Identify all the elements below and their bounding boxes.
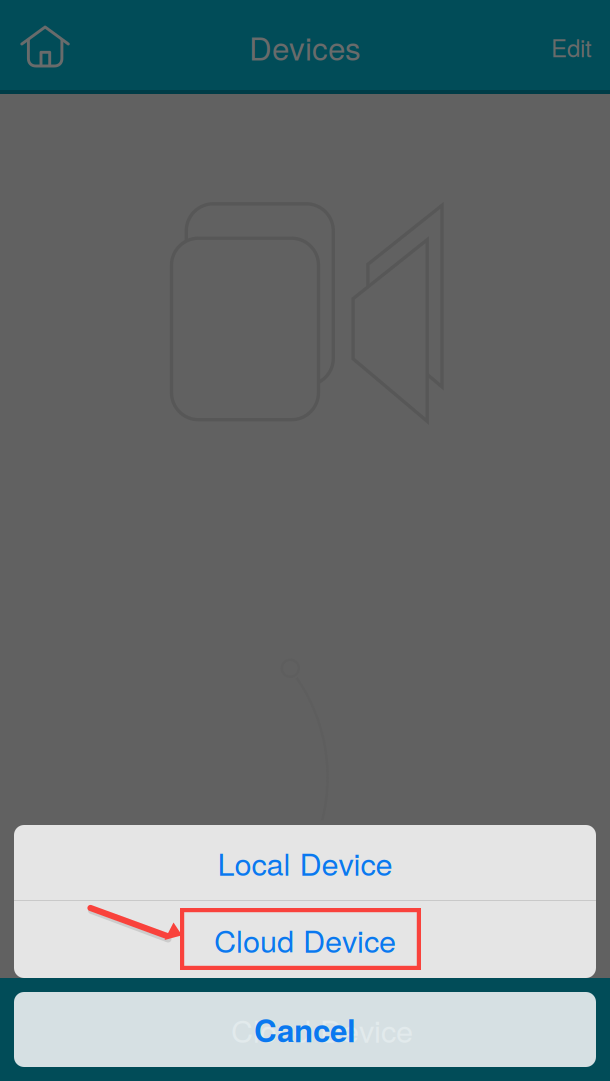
staticText: Devices <box>249 25 361 69</box>
button[interactable]: Cloud Device <box>0 992 610 1067</box>
staticText: Local Device <box>217 840 392 884</box>
button[interactable]: Local Device <box>14 825 596 900</box>
staticText: Cancel <box>254 1007 356 1052</box>
staticText: Edit <box>551 30 592 64</box>
staticText: Cloud Device <box>214 917 396 961</box>
button[interactable]: Edit <box>533 0 610 94</box>
button[interactable]: Home <box>0 0 83 94</box>
staticText: Cloud Device <box>231 1007 413 1051</box>
button[interactable]: Cloud Device <box>14 901 596 978</box>
